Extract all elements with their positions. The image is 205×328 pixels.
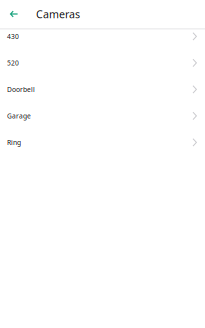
button[interactable]: 430 — [0, 26, 205, 53]
staticText: Cameras — [36, 7, 80, 21]
button[interactable]: Doorbell — [0, 79, 205, 106]
button[interactable]: Back — [0, 0, 28, 28]
staticText: 430 — [7, 32, 19, 41]
button[interactable]: 520 — [0, 53, 205, 79]
staticText: Ring — [7, 138, 21, 147]
staticText: Doorbell — [7, 85, 35, 94]
button[interactable]: Garage — [0, 106, 205, 132]
staticText: Garage — [7, 111, 31, 120]
staticText: 520 — [7, 58, 19, 67]
button[interactable]: Ring — [0, 132, 205, 159]
